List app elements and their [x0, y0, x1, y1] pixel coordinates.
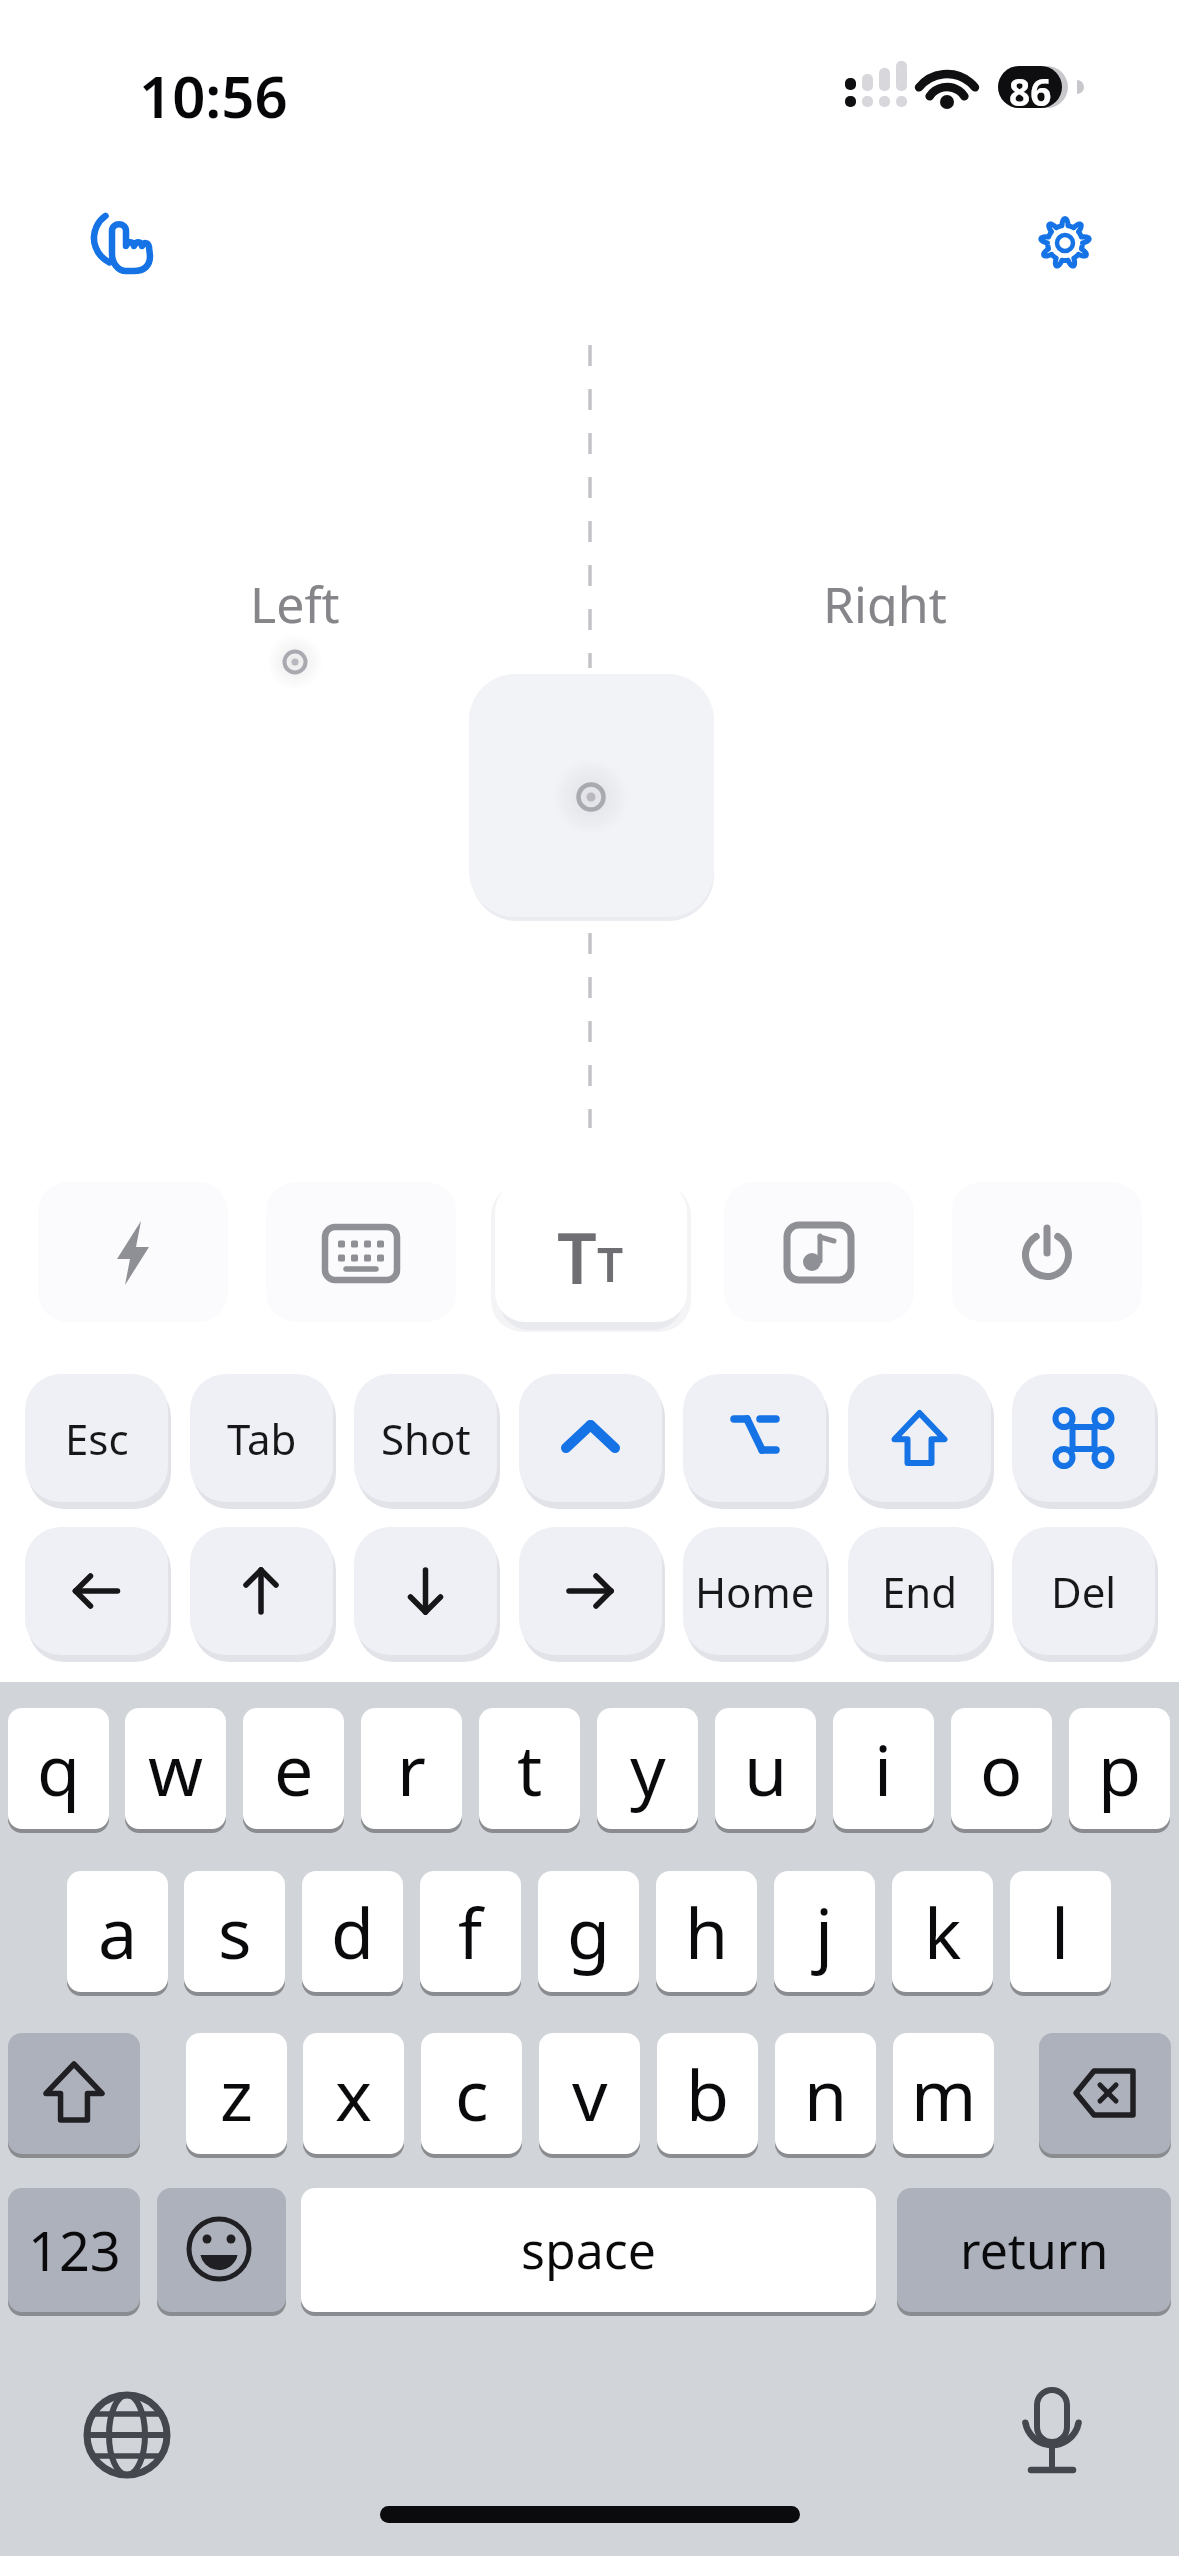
staticText: l [1051, 1884, 1070, 1979]
button[interactable] [190, 1527, 333, 1655]
staticText: T [597, 1233, 624, 1296]
button[interactable]: Home [683, 1527, 826, 1655]
staticText: Right [823, 570, 947, 626]
staticText: u [744, 1721, 788, 1816]
staticText: k [924, 1884, 962, 1979]
button[interactable] [1028, 206, 1102, 280]
staticText: q [37, 1721, 81, 1816]
button[interactable] [1012, 1374, 1155, 1502]
staticText: t [517, 1721, 543, 1816]
button[interactable]: Shot [354, 1374, 497, 1502]
button[interactable]: e [243, 1708, 344, 1829]
button[interactable] [79, 2387, 175, 2483]
staticText: f [458, 1884, 483, 1979]
button[interactable]: Esc [25, 1374, 168, 1502]
button[interactable] [683, 1374, 826, 1502]
staticText: space [521, 2216, 656, 2284]
button[interactable] [952, 1182, 1142, 1322]
button[interactable]: a [67, 1871, 168, 1992]
button[interactable] [469, 674, 714, 917]
button[interactable]: c [421, 2033, 522, 2154]
staticText: n [804, 2046, 848, 2141]
staticText: i [874, 1721, 893, 1816]
staticText: 10:56 [139, 56, 288, 120]
staticText: return [960, 2216, 1109, 2284]
button[interactable]: l [1010, 1871, 1111, 1992]
button[interactable] [8, 2033, 140, 2154]
button[interactable]: d [302, 1871, 403, 1992]
button[interactable]: q [8, 1708, 109, 1829]
staticText: b [686, 2046, 730, 2141]
button[interactable]: t [479, 1708, 580, 1829]
button[interactable]: j [774, 1871, 875, 1992]
button[interactable]: z [186, 2033, 287, 2154]
staticText: a [98, 1884, 138, 1979]
staticText: Esc [65, 1410, 129, 1467]
button[interactable]: Tab [190, 1374, 333, 1502]
button[interactable]: r [361, 1708, 462, 1829]
staticText: c [455, 2046, 489, 2141]
button[interactable]: p [1069, 1708, 1170, 1829]
button[interactable]: o [951, 1708, 1052, 1829]
staticText: e [274, 1721, 314, 1816]
staticText: x [335, 2046, 373, 2141]
button[interactable]: m [893, 2033, 994, 2154]
button[interactable] [519, 1527, 662, 1655]
button[interactable] [1004, 2384, 1100, 2480]
button[interactable] [80, 210, 152, 282]
staticText: m [911, 2046, 977, 2141]
button[interactable] [354, 1527, 497, 1655]
staticText: d [331, 1884, 375, 1979]
staticText: Shot [381, 1410, 471, 1467]
staticText: Left [250, 570, 340, 626]
staticText: 86 [1009, 66, 1052, 108]
staticText: Del [1051, 1563, 1117, 1620]
staticText: T [557, 1209, 597, 1287]
button[interactable]: 123 [8, 2188, 140, 2312]
button[interactable]: space [301, 2188, 876, 2312]
staticText: p [1098, 1721, 1142, 1816]
staticText: h [685, 1884, 729, 1979]
button[interactable]: g [538, 1871, 639, 1992]
button[interactable]: return [897, 2188, 1171, 2312]
button[interactable]: v [539, 2033, 640, 2154]
button[interactable]: n [775, 2033, 876, 2154]
button[interactable] [848, 1374, 991, 1502]
button[interactable] [724, 1182, 914, 1322]
staticText: End [882, 1563, 958, 1620]
staticText: z [220, 2046, 253, 2141]
button[interactable]: w [125, 1708, 226, 1829]
staticText: o [980, 1721, 1023, 1816]
button[interactable] [38, 1182, 228, 1322]
button[interactable]: h [656, 1871, 757, 1992]
button[interactable]: Del [1012, 1527, 1155, 1655]
button[interactable]: k [892, 1871, 993, 1992]
button[interactable] [495, 1182, 685, 1322]
button[interactable]: y [597, 1708, 698, 1829]
staticText: r [397, 1721, 426, 1816]
button[interactable]: End [848, 1527, 991, 1655]
button[interactable] [266, 1182, 456, 1322]
staticText: w [148, 1721, 204, 1816]
button[interactable]: x [303, 2033, 404, 2154]
staticText: Tab [227, 1410, 297, 1467]
button[interactable] [519, 1374, 662, 1502]
button[interactable] [1039, 2033, 1171, 2154]
button[interactable]: f [420, 1871, 521, 1992]
button[interactable]: b [657, 2033, 758, 2154]
button[interactable] [25, 1527, 168, 1655]
staticText: 123 [28, 2213, 121, 2287]
staticText: g [567, 1884, 611, 1979]
staticText: Home [695, 1563, 815, 1620]
staticText: v [572, 2046, 608, 2141]
button[interactable] [157, 2188, 286, 2312]
staticText: s [218, 1884, 252, 1979]
staticText: j [815, 1884, 834, 1979]
button[interactable]: s [184, 1871, 285, 1992]
staticText: y [630, 1721, 666, 1816]
button[interactable]: u [715, 1708, 816, 1829]
button[interactable]: i [833, 1708, 934, 1829]
button[interactable] [495, 1182, 687, 1322]
